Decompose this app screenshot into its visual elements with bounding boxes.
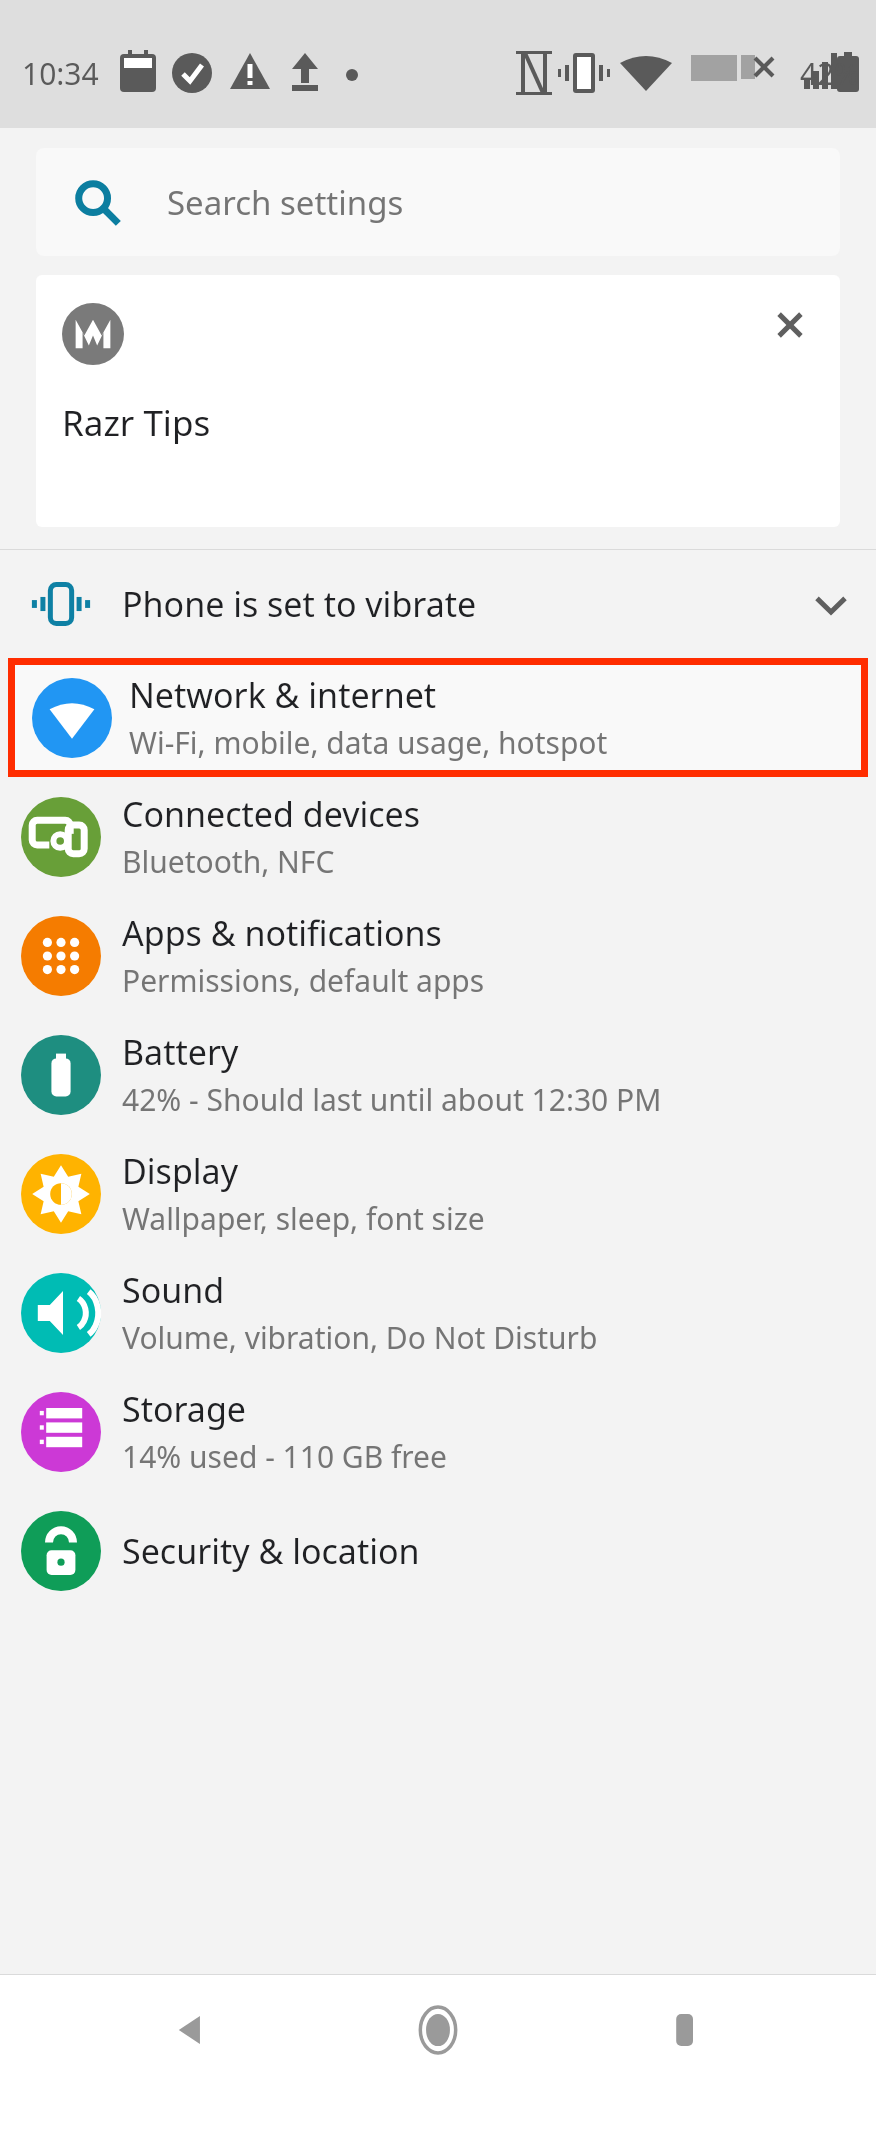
button[interactable]: Network & internet [15,665,861,770]
button[interactable]: Home [383,1975,493,2085]
staticText: Battery [122,1029,239,1075]
button[interactable]: Search settings [36,148,840,256]
button[interactable]: Connected devices [0,777,876,896]
staticText: 42% - Should last until about 12:30 PM [122,1079,662,1120]
staticText: 10:34 [22,53,99,94]
staticText: Phone is set to vibrate [122,581,786,627]
staticText: Sound [122,1267,225,1313]
button[interactable]: Battery [0,1015,876,1134]
staticText: 42% [800,53,860,94]
staticText: Wallpaper, sleep, font size [122,1198,485,1239]
button[interactable]: Display [0,1134,876,1253]
button[interactable]: Recents [630,1975,740,2085]
button[interactable]: Dismiss [758,293,822,357]
button[interactable]: Storage [0,1372,876,1491]
button[interactable]: Security & location [0,1491,876,1610]
button[interactable]: Apps & notifications [0,896,876,1015]
staticText: Security & location [122,1528,420,1574]
staticText: Bluetooth, NFC [122,841,335,882]
button[interactable]: Sound [0,1253,876,1372]
staticText: Connected devices [122,791,421,837]
staticText: Search settings [167,180,404,225]
staticText: Permissions, default apps [122,960,485,1001]
staticText: Volume, vibration, Do Not Disturb [122,1317,598,1358]
staticText: Storage [122,1386,247,1432]
staticText: 14% used - 110 GB free [122,1436,447,1477]
staticText: Razr Tips [62,399,211,447]
staticText: Display [122,1148,238,1194]
staticText: Wi-Fi, mobile, data usage, hotspot [129,722,608,763]
button[interactable]: Phone is set to vibrate [0,550,876,658]
button[interactable]: Dismiss [36,275,840,527]
staticText: Network & internet [129,672,437,718]
staticText: Apps & notifications [122,910,442,956]
button[interactable]: Back [137,1975,247,2085]
